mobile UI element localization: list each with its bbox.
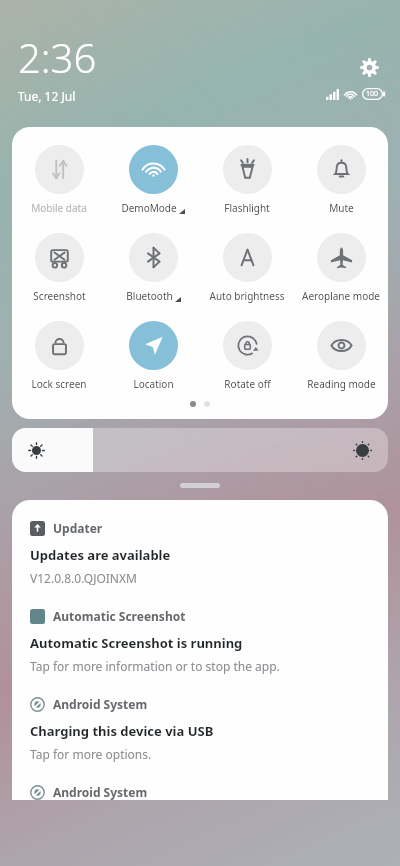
button[interactable]: Aeroplane mode: [294, 233, 388, 303]
staticText: Updater: [53, 520, 103, 536]
staticText: Lock screen: [31, 377, 87, 391]
button[interactable]: DemoMode: [106, 145, 200, 215]
staticText: Mobile data: [31, 201, 87, 215]
button[interactable]: Mobile data: [12, 145, 106, 215]
button[interactable]: Location: [106, 321, 200, 391]
button[interactable]: Screenshot: [12, 233, 106, 303]
staticText: Rotate off: [224, 377, 271, 391]
button[interactable]: Automatic Screenshot: [12, 608, 388, 674]
staticText: Automatic Screenshot: [53, 608, 186, 624]
button[interactable]: Rotate off: [200, 321, 294, 391]
staticText: Automatic Screenshot is running: [30, 634, 243, 652]
button[interactable]: Lock screen: [12, 321, 106, 391]
staticText: Charging this device via USB: [30, 722, 214, 740]
button[interactable]: Reading mode: [294, 321, 388, 391]
staticText: Flashlight: [224, 201, 270, 215]
button[interactable]: Android System: [12, 784, 388, 800]
button[interactable]: Auto brightness: [200, 233, 294, 303]
staticText: Mute: [329, 201, 354, 215]
button[interactable]: Mute: [294, 145, 388, 215]
button[interactable]: Brightness: [12, 428, 388, 472]
staticText: Screenshot: [33, 289, 86, 303]
staticText: 100: [366, 89, 379, 99]
staticText: V12.0.8.0.QJOINXM: [30, 570, 137, 586]
button[interactable]: Settings: [352, 50, 386, 84]
button[interactable]: Bluetooth: [106, 233, 200, 303]
staticText: Aeroplane mode: [302, 289, 380, 303]
staticText: Updates are available: [30, 546, 171, 564]
button[interactable]: Updater: [12, 520, 388, 586]
staticText: Tue, 12 Jul: [18, 88, 76, 104]
staticText: Location: [133, 377, 174, 391]
staticText: Android System: [53, 784, 148, 800]
button[interactable]: Flashlight: [200, 145, 294, 215]
staticText: Auto brightness: [209, 289, 285, 303]
staticText: Reading mode: [307, 377, 376, 391]
staticText: Tap for more information or to stop the …: [30, 658, 280, 674]
staticText: Android System: [53, 696, 148, 712]
staticText: Tap for more options.: [30, 746, 152, 762]
button[interactable]: Android System: [12, 696, 388, 762]
staticText: Bluetooth: [126, 289, 173, 303]
staticText: 2:36: [18, 30, 97, 84]
staticText: DemoMode: [121, 201, 177, 215]
